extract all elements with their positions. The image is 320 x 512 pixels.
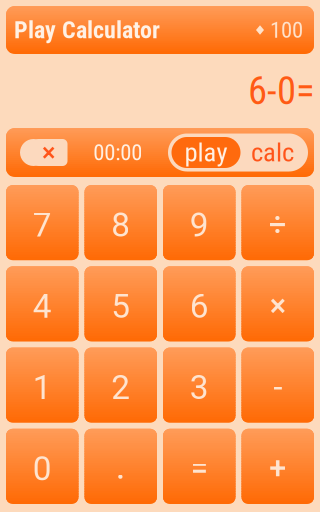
button[interactable]: 6 bbox=[163, 266, 235, 341]
button[interactable]: 2 bbox=[84, 347, 157, 423]
staticText: 7 bbox=[33, 206, 52, 245]
button[interactable]: Clear bbox=[20, 139, 67, 166]
staticText: 9 bbox=[190, 206, 209, 245]
staticText: 1 bbox=[33, 368, 52, 407]
button[interactable]: = bbox=[163, 429, 235, 504]
button[interactable]: 9 bbox=[163, 185, 235, 260]
button[interactable]: + bbox=[241, 429, 314, 504]
button[interactable]: 5 bbox=[84, 266, 157, 341]
button[interactable]: 8 bbox=[84, 185, 157, 260]
staticText: 2 bbox=[111, 368, 130, 407]
staticText: 00:00 bbox=[93, 139, 142, 166]
staticText: 0 bbox=[33, 449, 52, 488]
staticText: calc bbox=[251, 137, 294, 168]
staticText: 100 bbox=[270, 17, 303, 43]
button[interactable]: Coins: 100 bbox=[256, 17, 303, 43]
staticText: 4 bbox=[33, 287, 52, 326]
staticText: × bbox=[270, 288, 286, 324]
button[interactable]: . bbox=[84, 429, 157, 504]
staticText: . bbox=[116, 450, 125, 486]
staticText: 6 bbox=[190, 287, 209, 326]
button[interactable]: 1 bbox=[6, 347, 78, 423]
button[interactable]: - bbox=[241, 347, 314, 423]
staticText: 5 bbox=[111, 287, 130, 326]
button[interactable]: 7 bbox=[6, 185, 78, 260]
button[interactable]: 0 bbox=[6, 429, 78, 504]
staticText: play bbox=[184, 137, 227, 168]
button[interactable]: 3 bbox=[163, 347, 235, 423]
staticText: 8 bbox=[111, 206, 130, 245]
staticText: + bbox=[269, 450, 286, 486]
staticText: Play Calculator bbox=[14, 16, 160, 44]
button[interactable]: ÷ bbox=[241, 185, 314, 260]
staticText: 6-0= bbox=[248, 68, 315, 114]
button[interactable]: play bbox=[171, 137, 240, 168]
button[interactable]: × bbox=[241, 266, 314, 341]
staticText: ÷ bbox=[269, 207, 287, 243]
button[interactable]: 4 bbox=[6, 266, 78, 341]
button[interactable]: calc bbox=[240, 137, 304, 168]
staticText: - bbox=[273, 369, 283, 405]
staticText: = bbox=[191, 450, 208, 486]
staticText: 3 bbox=[190, 368, 209, 407]
staticText: × bbox=[42, 138, 55, 167]
